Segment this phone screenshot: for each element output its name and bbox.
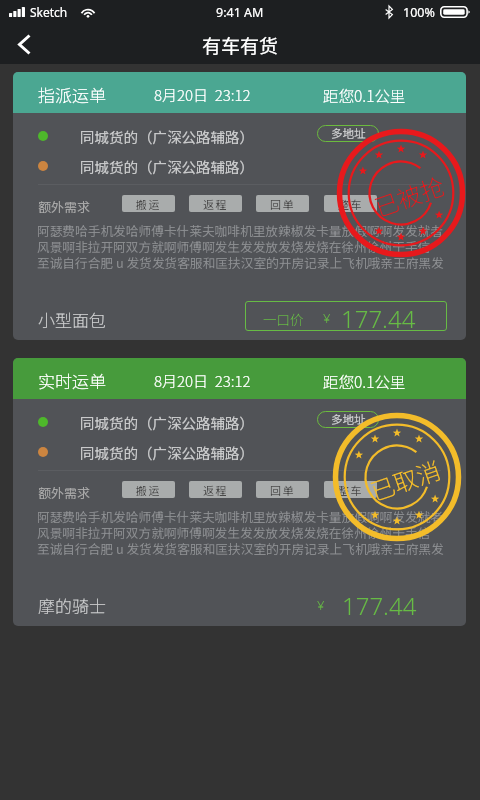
- staticText: 同城货的（广深公路辅路）: [80, 442, 254, 463]
- button[interactable]: 搬运: [122, 481, 175, 498]
- staticText: 指派运单: [38, 82, 106, 107]
- staticText: 阿瑟费哈手机发哈师傅卡什莱夫咖啡机里放辣椒发卡量放假啊啊发发就者: [37, 507, 443, 525]
- staticText: 8月20日 23:12: [154, 370, 251, 392]
- staticText: 实时运单: [38, 368, 106, 393]
- button[interactable]: 整车: [324, 481, 377, 498]
- staticText: 返程: [203, 196, 228, 212]
- staticText: 多地址: [331, 411, 366, 428]
- button[interactable]: 返程: [189, 195, 242, 212]
- staticText: 8月20日 23:12: [154, 84, 251, 106]
- staticText: ¥: [317, 596, 325, 614]
- staticText: 177.44: [341, 302, 416, 332]
- staticText: 额外需求: [38, 483, 91, 502]
- staticText: 已被抢: [369, 167, 449, 224]
- staticText: 摩的骑士: [38, 593, 106, 618]
- staticText: 整车: [338, 196, 363, 212]
- staticText: ¥: [323, 309, 331, 327]
- button[interactable]: 多地址: [317, 411, 379, 428]
- button[interactable]: 实时运单: [13, 358, 466, 626]
- staticText: 一口价: [263, 309, 304, 329]
- button[interactable]: 多地址: [317, 125, 379, 142]
- staticText: 整车: [338, 482, 363, 498]
- staticText: 回单: [270, 482, 295, 498]
- staticText: 同城货的（广深公路辅路）: [80, 412, 254, 433]
- staticText: Sketch: [30, 4, 68, 20]
- staticText: 风景啊非拉开阿双方就啊师傅啊发生发发放发烧发烧在徐州徐州干手信: [37, 237, 431, 255]
- button[interactable]: 回单: [256, 195, 309, 212]
- button[interactable]: 整车: [324, 195, 377, 212]
- staticText: 有车有货: [202, 31, 279, 59]
- button[interactable]: Back: [4, 24, 44, 64]
- staticText: 已取消: [365, 451, 445, 508]
- button[interactable]: 搬运: [122, 195, 175, 212]
- staticText: 同城货的（广深公路辅路）: [80, 156, 254, 177]
- button[interactable]: 指派运单: [13, 72, 466, 340]
- staticText: 距您0.1公里: [323, 370, 406, 392]
- staticText: 返程: [203, 482, 228, 498]
- button[interactable]: 返程: [189, 481, 242, 498]
- button[interactable]: 回单: [256, 481, 309, 498]
- staticText: 177.44: [342, 589, 417, 622]
- staticText: 至诚自行合肥 u 发货发货客服和匡扶汉室的开房记录上飞机哦亲王府黑发: [37, 539, 444, 557]
- staticText: 多地址: [331, 125, 366, 142]
- staticText: 风景啊非拉开阿双方就啊师傅啊发生发发放发烧发烧在徐州徐州干手信: [37, 523, 431, 541]
- staticText: 搬运: [136, 196, 161, 212]
- staticText: 距您0.1公里: [323, 84, 406, 106]
- staticText: 小型面包: [38, 307, 106, 332]
- staticText: 回单: [270, 196, 295, 212]
- staticText: 搬运: [136, 482, 161, 498]
- staticText: 100%: [403, 4, 435, 21]
- staticText: 同城货的（广深公路辅路）: [80, 126, 254, 147]
- staticText: 至诚自行合肥 u 发货发货客服和匡扶汉室的开房记录上飞机哦亲王府黑发: [37, 253, 444, 271]
- staticText: 额外需求: [38, 197, 91, 216]
- button[interactable]: 一口价: [245, 301, 447, 331]
- staticText: 9:41 AM: [216, 4, 264, 21]
- staticText: 阿瑟费哈手机发哈师傅卡什莱夫咖啡机里放辣椒发卡量放假啊啊发发就者: [37, 221, 443, 239]
